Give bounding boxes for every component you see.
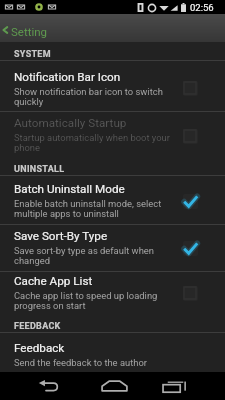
button[interactable]: Home xyxy=(90,372,138,400)
staticText: Batch Uninstall Mode xyxy=(14,182,125,196)
button[interactable]: Recents xyxy=(151,372,199,400)
staticText: UNINSTALL xyxy=(14,164,65,175)
staticText: SYSTEM xyxy=(14,49,51,60)
button[interactable]: Notification Bar Icon xyxy=(0,61,225,111)
button[interactable]: Save Sort-By Type xyxy=(0,225,225,271)
staticText: Automatically Startup xyxy=(14,116,127,130)
button[interactable]: Automatically Startup xyxy=(0,112,225,157)
button[interactable]: Cache App List xyxy=(0,272,225,314)
button[interactable]: Setting xyxy=(0,14,225,42)
staticText: 02:56 xyxy=(190,2,214,13)
staticText: Show notification bar icon to switch qui… xyxy=(14,86,163,108)
staticText: Enable batch uninstall mode, select mult… xyxy=(14,198,162,220)
button[interactable]: Feedback xyxy=(0,333,225,372)
staticText: Cache App List xyxy=(14,274,93,288)
staticText: Save sort-by type as default when change… xyxy=(14,245,154,267)
staticText: Notification Bar Icon xyxy=(14,70,121,84)
staticText: Setting xyxy=(11,25,48,38)
button[interactable]: Back xyxy=(24,372,72,400)
staticText: Save Sort-By Type xyxy=(14,229,108,243)
staticText: Feedback xyxy=(14,341,65,355)
staticText: Startup automatically when boot your pho… xyxy=(14,132,170,154)
staticText: Send the feedback to the author xyxy=(14,357,148,368)
staticText: FEEDBACK xyxy=(14,321,61,332)
button[interactable]: Batch Uninstall Mode xyxy=(0,176,225,224)
staticText: Cache app list to speed up loading progr… xyxy=(14,290,158,312)
